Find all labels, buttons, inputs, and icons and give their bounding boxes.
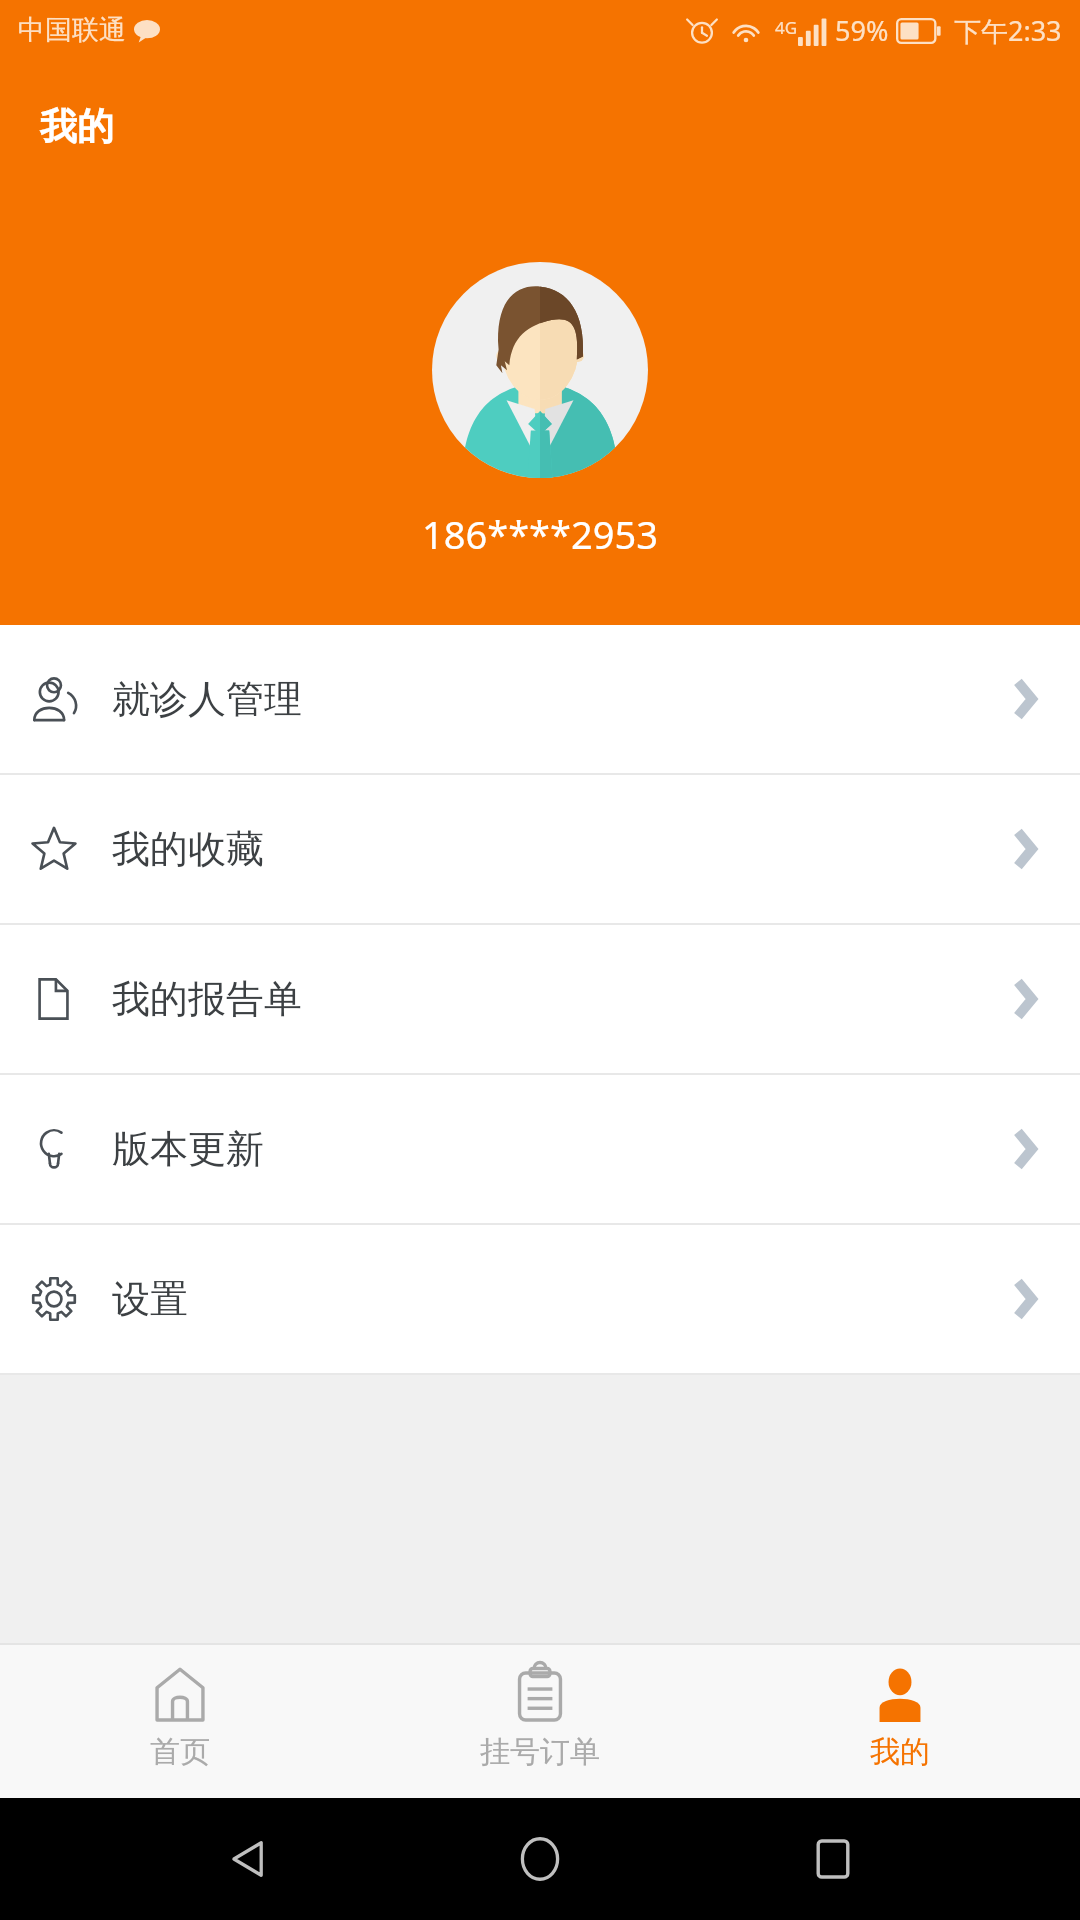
button[interactable]: 我的 <box>720 1645 1080 1798</box>
button[interactable]: 我的收藏 <box>0 775 1080 923</box>
staticText: 中国联通 <box>18 13 126 47</box>
button[interactable]: 我的报告单 <box>0 925 1080 1073</box>
staticText: 我的 <box>40 103 114 150</box>
button[interactable]: 设置 <box>0 1225 1080 1373</box>
button[interactable]: 版本更新 <box>0 1075 1080 1223</box>
button[interactable]: 就诊人管理 <box>0 625 1080 773</box>
staticText: 版本更新 <box>112 1125 1012 1173</box>
button[interactable]: 首页 <box>0 1645 360 1798</box>
staticText: 设置 <box>112 1275 1012 1323</box>
staticText: 挂号订单 <box>480 1733 600 1771</box>
staticText: 4G <box>775 16 798 39</box>
staticText: 我的收藏 <box>112 825 1012 873</box>
staticText: 就诊人管理 <box>112 675 1012 723</box>
button[interactable]: Back <box>203 1814 293 1904</box>
staticText: 186****2953 <box>422 508 658 560</box>
button[interactable]: 挂号订单 <box>360 1645 720 1798</box>
staticText: 59% <box>835 12 889 49</box>
button[interactable]: Recent apps <box>788 1814 878 1904</box>
staticText: 我的报告单 <box>112 975 1012 1023</box>
staticText: 首页 <box>150 1733 210 1771</box>
staticText: 我的 <box>870 1733 930 1771</box>
button[interactable]: Home <box>495 1814 585 1904</box>
staticText: 下午2:33 <box>954 12 1062 49</box>
